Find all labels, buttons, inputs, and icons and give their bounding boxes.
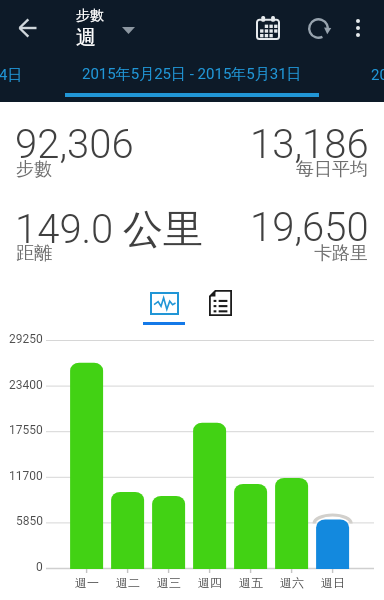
staticText: 週日 [321,575,345,590]
staticText: 週二 [116,575,140,590]
staticText: 卡路里 [314,242,368,265]
staticText: 23400 [9,378,43,392]
button[interactable] [142,288,186,325]
staticText: 13,186 [250,121,369,168]
staticText: 4日 [0,66,23,85]
staticText: 週四 [198,575,222,590]
staticText: 步數 [16,158,52,181]
staticText: 92,306 [15,121,134,168]
staticText: 5850 [16,514,43,528]
staticText: 週六 [280,575,304,590]
button[interactable] [0,0,56,56]
staticText: 週 [76,25,96,50]
button[interactable]: 步數 [76,7,135,50]
staticText: 每日平均 [296,158,368,181]
staticText: 0 [36,560,43,574]
button[interactable] [198,288,242,328]
staticText: 11700 [9,469,43,483]
staticText: 2015年5月25日 - 2015年5月31日 [82,65,302,84]
button[interactable] [292,0,344,56]
staticText: 20 [371,66,384,84]
button[interactable] [344,0,372,56]
button[interactable]: 2015年5月25日 - 2015年5月31日 [82,65,302,84]
staticText: 距離 [16,242,52,265]
staticText: 週三 [157,575,181,590]
staticText: 17550 [9,423,43,437]
staticText: 步數 [76,7,104,25]
button[interactable] [244,0,292,56]
staticText: 149.0 公里 [15,204,204,254]
staticText: 19,650 [250,204,369,251]
staticText: 週一 [75,575,99,590]
staticText: 29250 [9,332,43,346]
staticText: 週五 [239,575,263,590]
